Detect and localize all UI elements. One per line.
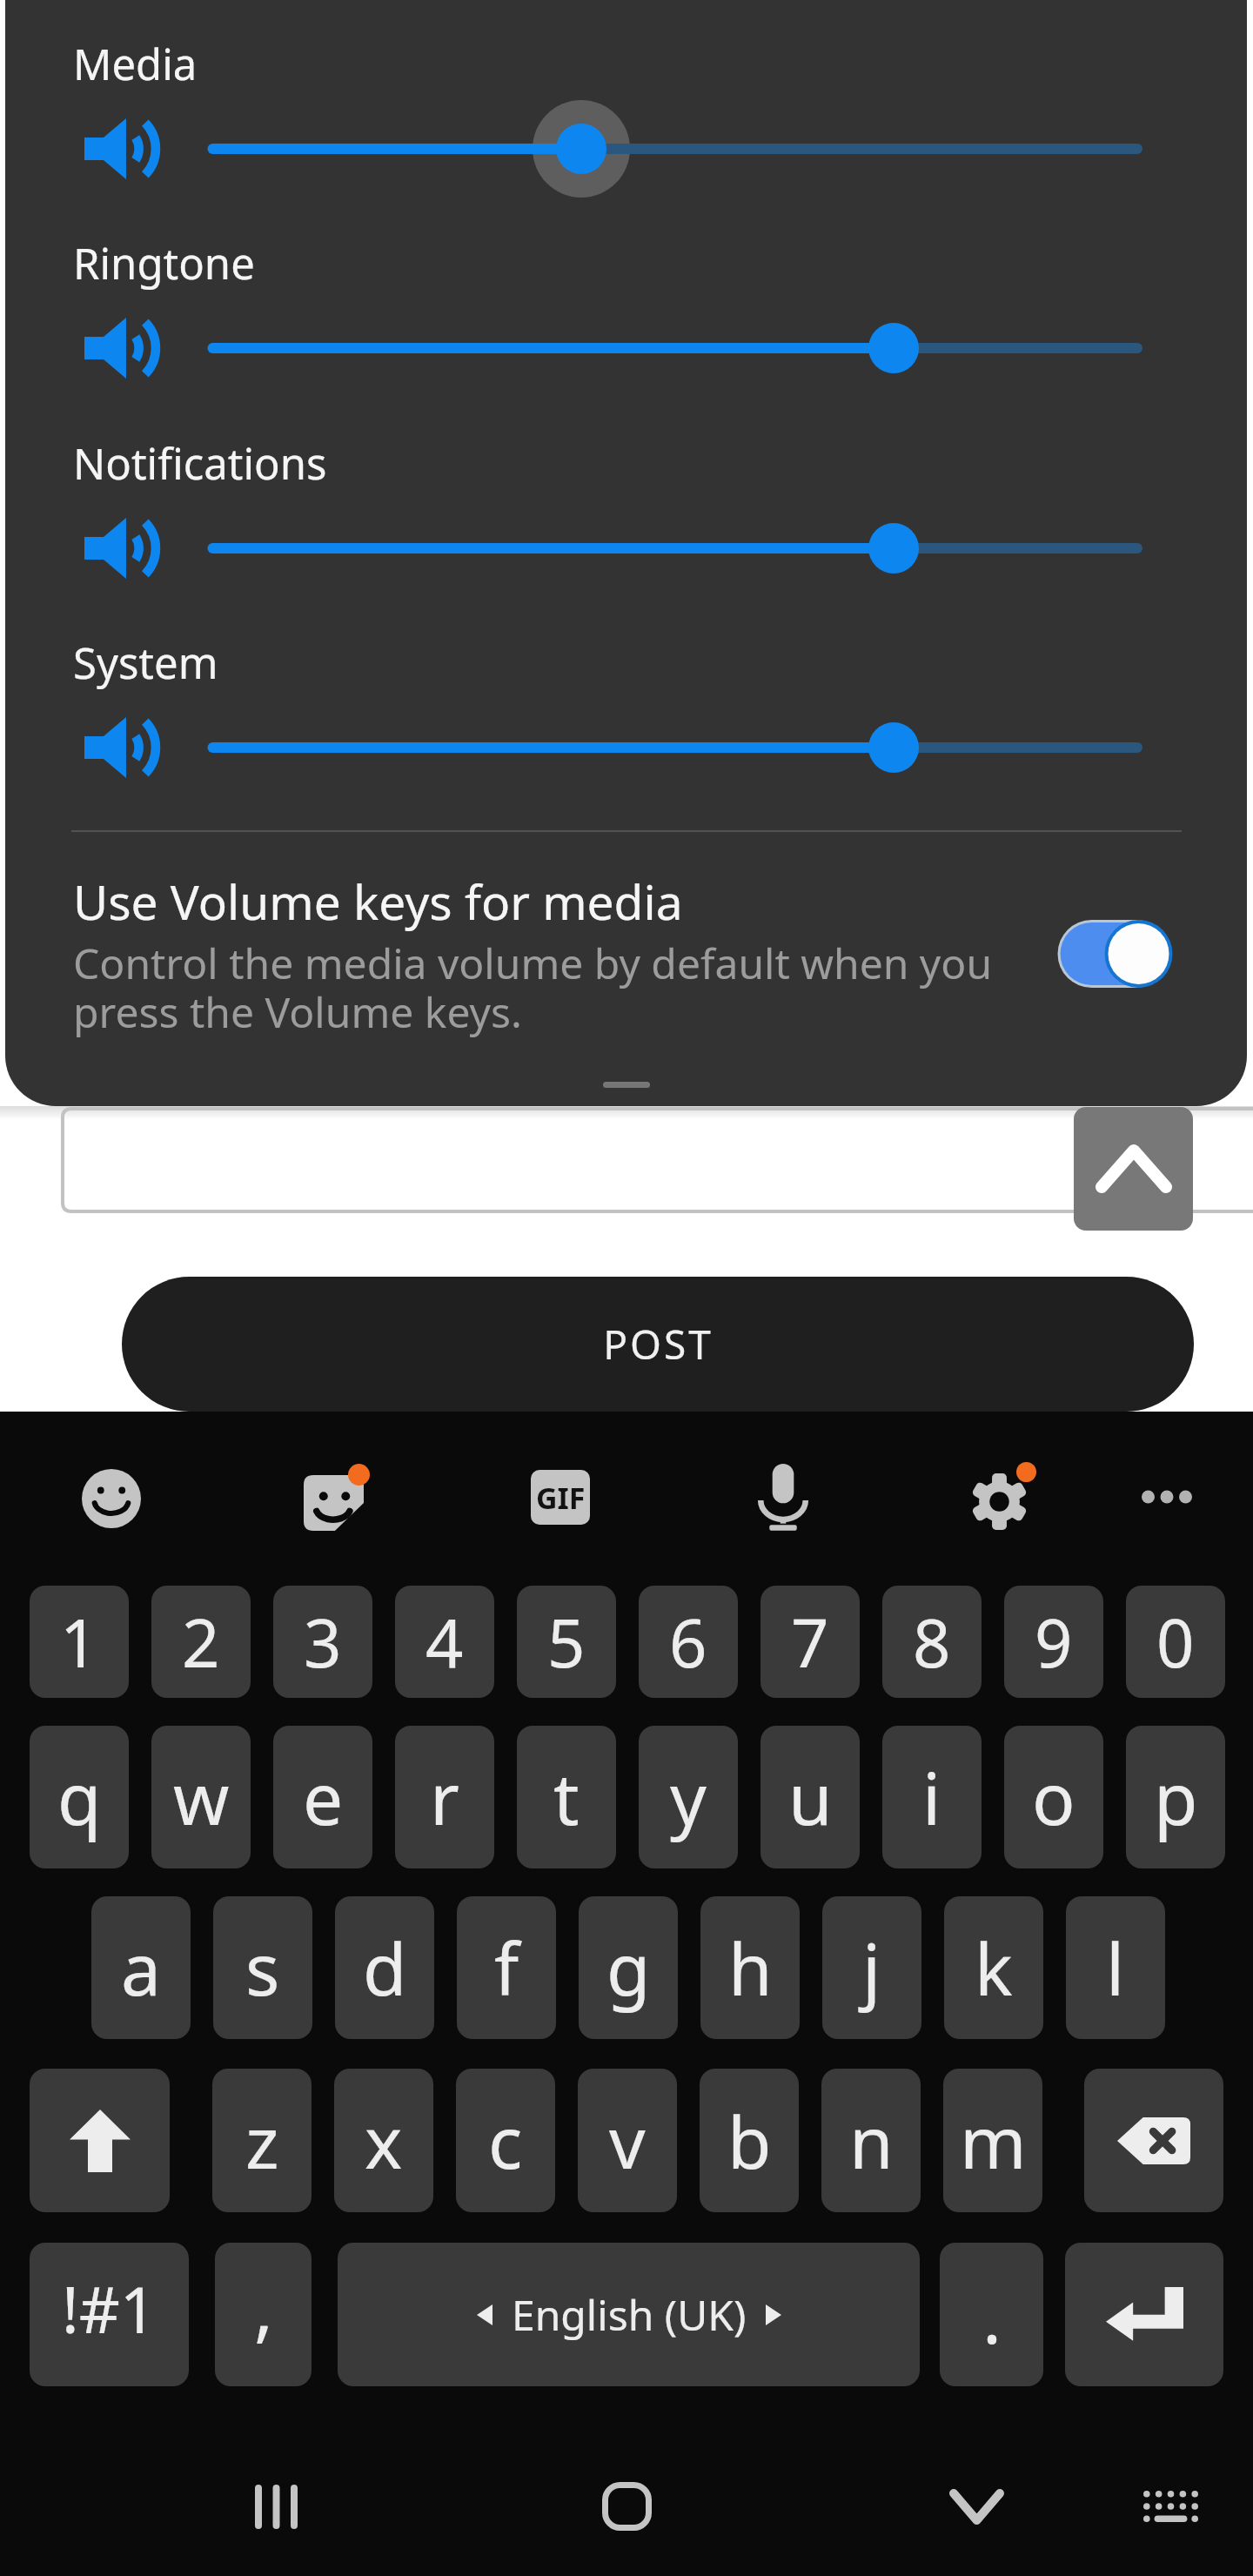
button[interactable]: d [335,1896,434,2039]
staticText: n [849,2092,894,2190]
button[interactable]: Expand [1074,1107,1193,1231]
button[interactable] [5,101,1247,197]
button[interactable]: 9 [1004,1586,1103,1698]
staticText: b [727,2092,772,2190]
staticText: k [975,1919,1013,2016]
button[interactable]: t [517,1726,616,1868]
staticText: y [670,1748,707,1846]
button[interactable] [1084,2069,1223,2212]
staticText: x [365,2092,403,2190]
staticText: i [922,1748,941,1846]
staticText: w [173,1748,230,1846]
staticText: !#1 [62,2265,157,2351]
button[interactable]: z [212,2069,312,2212]
staticText: GIF [536,1478,586,1518]
button[interactable]: k [944,1896,1043,2039]
button[interactable]: GIF [505,1444,616,1551]
staticText: , [254,2257,273,2355]
button[interactable]: . [940,2243,1043,2386]
button[interactable]: r [395,1726,494,1868]
staticText: s [245,1919,280,2016]
staticText: e [303,1748,344,1846]
button[interactable]: b [700,2069,799,2212]
staticText: 7 [791,1597,829,1687]
button[interactable]: !#1 [30,2243,189,2386]
staticText: h [728,1919,773,2016]
button[interactable]: j [822,1896,921,2039]
staticText: 9 [1035,1597,1073,1687]
staticText: z [245,2092,279,2190]
staticText: v [609,2092,646,2190]
button[interactable]: i [882,1726,982,1868]
button[interactable]: Hide keyboard [907,2450,1046,2563]
button[interactable]: p [1126,1726,1225,1868]
button[interactable]: a [91,1896,191,2039]
button[interactable]: h [700,1896,800,2039]
button[interactable] [5,300,1247,396]
button[interactable]: 7 [761,1586,860,1698]
staticText: r [430,1748,459,1846]
staticText: Notifications [73,434,327,493]
staticText: j [862,1919,881,2016]
button[interactable]: 0 [1126,1586,1225,1698]
button[interactable]: o [1004,1726,1103,1868]
staticText: 1 [60,1597,98,1687]
staticText: g [606,1919,651,2016]
staticText: t [553,1748,580,1846]
button[interactable]: More options [1116,1464,1218,1530]
button[interactable]: Change keyboard [1101,2450,1240,2563]
button[interactable]: q [30,1726,129,1868]
staticText: d [363,1919,407,2016]
button[interactable]: y [639,1726,738,1868]
button[interactable]: w [151,1726,251,1868]
button[interactable]: 6 [639,1586,738,1698]
button[interactable]: 4 [395,1586,494,1698]
button[interactable]: c [456,2069,555,2212]
button[interactable]: 3 [273,1586,372,1698]
button[interactable]: 8 [882,1586,982,1698]
button[interactable]: 5 [517,1586,616,1698]
button[interactable] [30,2069,170,2212]
staticText: 6 [669,1597,707,1687]
staticText: 3 [304,1597,342,1687]
staticText: Media [73,35,198,93]
button[interactable]: Use Volume keys for media [5,851,1247,1069]
button[interactable]: Home [557,2450,696,2563]
button[interactable]: 2 [151,1586,251,1698]
button[interactable]: Settings [948,1438,1065,1554]
button[interactable]: Voice input [733,1438,834,1558]
button[interactable]: m [943,2069,1042,2212]
button[interactable]: 1 [30,1586,129,1698]
staticText: Ringtone [73,234,255,292]
staticText: POST [603,1317,714,1372]
staticText: Control the media volume by default when… [73,935,1008,1040]
button[interactable]: s [213,1896,312,2039]
staticText: 4 [425,1597,464,1687]
button[interactable]: f [457,1896,556,2039]
button[interactable]: Emoji [56,1443,167,1554]
button[interactable]: Stickers [280,1439,393,1554]
button[interactable] [1065,2243,1223,2386]
button[interactable] [5,700,1247,795]
button[interactable]: English (UK) [338,2243,920,2386]
staticText: m [960,2092,1027,2190]
button[interactable]: x [334,2069,433,2212]
staticText: l [1106,1919,1125,2016]
staticText: f [494,1919,519,2016]
button[interactable]: Recent apps [206,2450,345,2563]
button[interactable] [59,1107,1253,1213]
staticText: Use Volume keys for media [73,869,683,934]
button[interactable]: l [1066,1896,1165,2039]
staticText: . [982,2267,1002,2365]
staticText: q [57,1748,102,1846]
button[interactable]: , [215,2243,312,2386]
staticText: a [121,1919,162,2016]
button[interactable]: n [821,2069,921,2212]
button[interactable]: g [579,1896,678,2039]
button[interactable]: e [273,1726,372,1868]
button[interactable]: v [578,2069,677,2212]
button[interactable]: u [761,1726,860,1868]
staticText: 5 [547,1597,586,1687]
button[interactable]: POST [122,1277,1194,1412]
button[interactable] [5,500,1247,596]
